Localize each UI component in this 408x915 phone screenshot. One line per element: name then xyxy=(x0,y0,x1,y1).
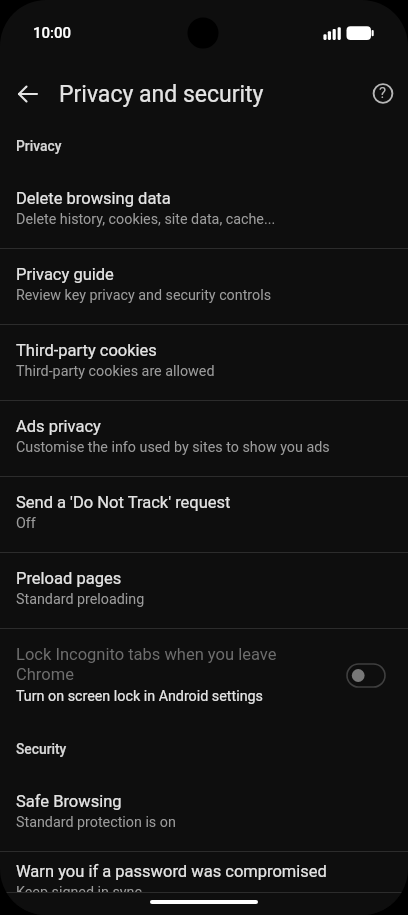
staticText: Third-party cookies xyxy=(16,341,157,360)
button[interactable]: Ads privacy xyxy=(0,401,408,477)
button[interactable]: Navigate up xyxy=(4,70,52,118)
button[interactable]: Lock Incognito tabs when you leave Chrom… xyxy=(0,629,408,721)
button[interactable]: Delete browsing data xyxy=(0,173,408,249)
button[interactable]: Help and feedback xyxy=(360,71,406,117)
staticText: Keep signed in sync xyxy=(16,884,142,901)
button[interactable]: Send a 'Do Not Track' request xyxy=(0,477,408,553)
staticText: Customise the info used by sites to show… xyxy=(16,439,330,456)
staticText: Turn on screen lock in Android settings xyxy=(16,688,263,705)
staticText: Warn you if a password was compromised xyxy=(16,862,327,881)
staticText: Lock Incognito tabs when you leave Chrom… xyxy=(16,645,290,684)
staticText: Security xyxy=(16,741,67,757)
staticText: Third-party cookies are allowed xyxy=(16,363,215,380)
button[interactable]: Third-party cookies xyxy=(0,325,408,401)
staticText: Safe Browsing xyxy=(16,792,122,811)
staticText: Ads privacy xyxy=(16,417,101,436)
staticText: Delete browsing data xyxy=(16,189,171,208)
staticText: Review key privacy and security controls xyxy=(16,287,272,304)
staticText: Standard protection is on xyxy=(16,814,176,831)
staticText: 10:00 xyxy=(33,24,72,42)
staticText: Privacy and security xyxy=(59,81,264,108)
button[interactable]: Warn you if a password was compromised xyxy=(0,852,408,915)
staticText: Send a 'Do Not Track' request xyxy=(16,493,231,512)
staticText: Privacy guide xyxy=(16,265,114,284)
staticText: Standard preloading xyxy=(16,591,145,608)
staticText: Privacy xyxy=(16,138,62,154)
staticText: ? xyxy=(379,84,387,102)
staticText: Off xyxy=(16,515,36,532)
staticText: Preload pages xyxy=(16,569,122,588)
button[interactable]: Preload pages xyxy=(0,553,408,629)
button[interactable]: Safe Browsing xyxy=(0,776,408,852)
staticText: Delete history, cookies, site data, cach… xyxy=(16,211,276,228)
button[interactable]: Privacy guide xyxy=(0,249,408,325)
button[interactable]: Lock Incognito tabs toggle xyxy=(346,663,386,688)
